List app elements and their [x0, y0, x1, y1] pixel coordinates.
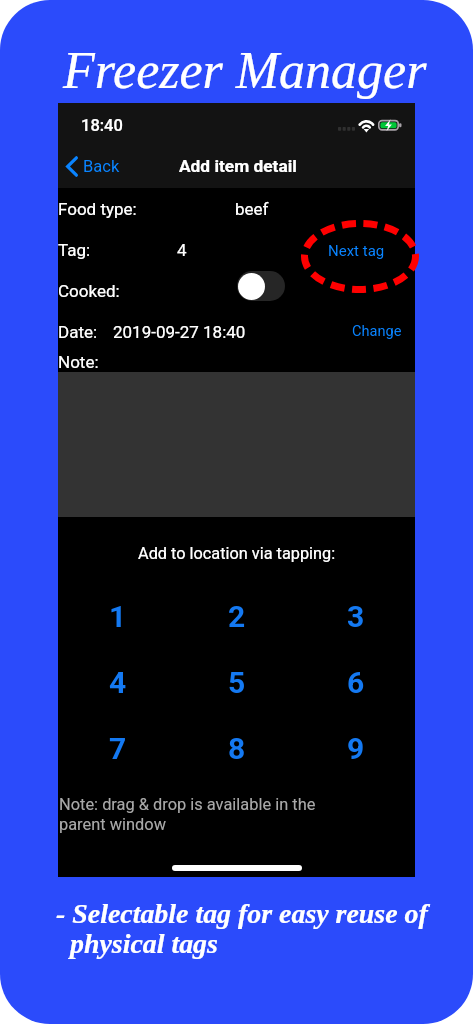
button[interactable]: Change	[346, 317, 408, 344]
button[interactable]: 1	[58, 584, 177, 648]
staticText: 6	[347, 665, 365, 700]
button[interactable]: 6	[296, 650, 415, 714]
staticText: Next tag	[328, 242, 385, 260]
staticText: 8	[228, 731, 246, 766]
staticText: 4	[177, 240, 187, 260]
staticText: Note:	[58, 352, 99, 372]
button[interactable]: 7	[58, 716, 177, 780]
staticText: Date:	[58, 322, 98, 342]
button[interactable]: Cooked toggle	[237, 271, 285, 301]
button[interactable]: 3	[296, 584, 415, 648]
staticText: Freezer Manager	[63, 42, 427, 100]
staticText: 2019-09-27 18:40	[113, 322, 246, 342]
staticText: Food type:	[58, 199, 137, 219]
staticText: Back	[83, 157, 120, 176]
button[interactable]: 8	[177, 716, 296, 780]
staticText: - Selectable tag for easy reuse of physi…	[56, 898, 428, 959]
staticText: beef	[235, 199, 269, 219]
button[interactable]: Next tag	[316, 235, 397, 267]
staticText: Cooked:	[58, 281, 120, 301]
button[interactable]: 2	[177, 584, 296, 648]
staticText: 7	[109, 731, 127, 766]
staticText: Add item detail	[179, 156, 297, 176]
staticText: 2	[228, 599, 246, 634]
staticText: Add to location via tapping:	[138, 544, 336, 563]
staticText: 18:40	[81, 116, 123, 135]
staticText: 1	[109, 599, 127, 634]
staticText: Note: drag & drop is available in the pa…	[59, 795, 316, 834]
button[interactable]: 4	[58, 650, 177, 714]
button[interactable]: Back	[62, 152, 126, 181]
staticText: Tag:	[58, 240, 91, 260]
staticText: 3	[347, 599, 365, 634]
staticText: 9	[347, 731, 365, 766]
button[interactable]: 9	[296, 716, 415, 780]
staticText: Change	[352, 322, 402, 339]
button[interactable]: 5	[177, 650, 296, 714]
staticText: 4	[109, 665, 127, 700]
staticText: 5	[228, 665, 246, 700]
